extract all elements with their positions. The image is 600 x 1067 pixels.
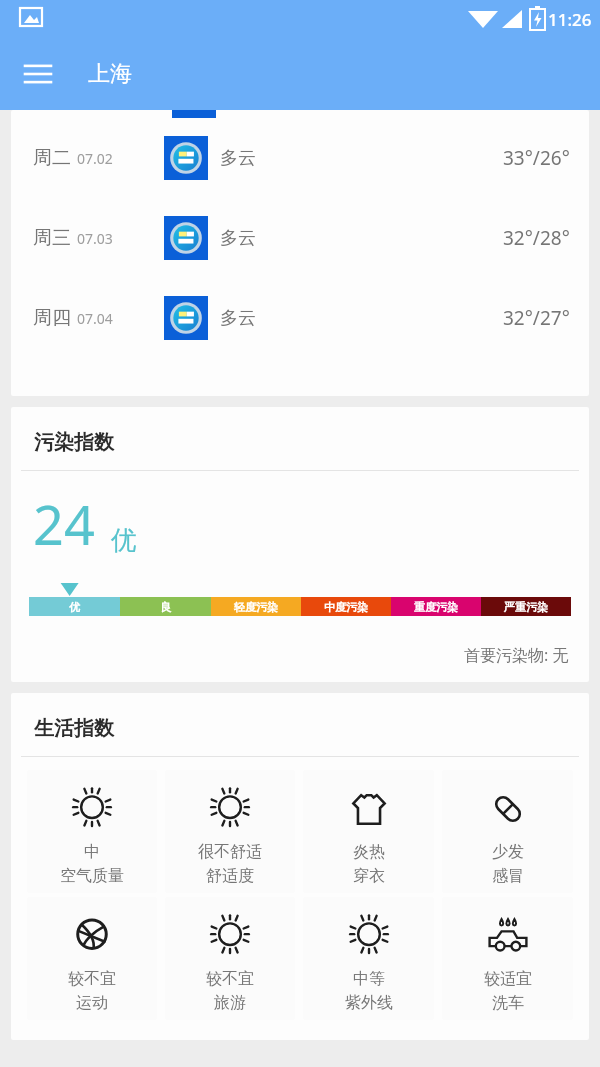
button[interactable]: 少发: [442, 770, 573, 893]
staticText: 07.03: [77, 229, 113, 248]
button[interactable]: 很不舒适: [165, 770, 295, 893]
staticText: 33°/26°: [503, 145, 570, 171]
staticText: 多云: [220, 227, 256, 250]
button[interactable]: 中等: [303, 897, 434, 1020]
staticText: 生活指数: [34, 716, 114, 741]
staticText: 感冒: [492, 866, 524, 886]
staticText: 良: [160, 600, 171, 614]
staticText: 洗车: [492, 993, 524, 1013]
button[interactable]: 较适宜: [442, 897, 573, 1020]
button[interactable]: 周二: [11, 118, 589, 198]
staticText: 旅游: [214, 993, 246, 1013]
button[interactable]: 周三: [11, 198, 589, 278]
staticText: 空气质量: [60, 866, 124, 886]
staticText: 较不宜: [68, 969, 116, 989]
staticText: 舒适度: [206, 866, 254, 886]
button[interactable]: 较不宜: [27, 897, 157, 1020]
staticText: 优: [69, 600, 80, 614]
staticText: 轻度污染: [234, 600, 278, 614]
button[interactable]: 中: [27, 770, 157, 893]
staticText: 11:26: [548, 8, 592, 31]
staticText: 32°/27°: [503, 305, 570, 331]
staticText: 首要污染物: 无: [464, 644, 569, 666]
staticText: 周四: [33, 306, 71, 330]
staticText: 07.02: [77, 149, 113, 168]
staticText: 紫外线: [345, 993, 393, 1013]
staticText: 多云: [220, 147, 256, 170]
staticText: 24: [33, 487, 95, 561]
staticText: 重度污染: [414, 600, 458, 614]
staticText: 中: [84, 842, 100, 862]
staticText: 污染指数: [34, 430, 114, 455]
staticText: 32°/28°: [503, 225, 570, 251]
button[interactable]: 较不宜: [165, 897, 295, 1020]
button[interactable]: Menu: [12, 48, 64, 100]
staticText: 较不宜: [206, 969, 254, 989]
staticText: 炎热: [353, 842, 385, 862]
staticText: 07.04: [77, 309, 113, 328]
staticText: 周三: [33, 226, 71, 250]
staticText: 周二: [33, 146, 71, 170]
button[interactable]: 周四: [11, 278, 589, 358]
staticText: 运动: [76, 993, 108, 1013]
staticText: 严重污染: [504, 600, 548, 614]
staticText: 多云: [220, 307, 256, 330]
staticText: 穿衣: [353, 866, 385, 886]
staticText: 中等: [353, 969, 385, 989]
staticText: 优: [111, 524, 137, 557]
staticText: 少发: [492, 842, 524, 862]
button[interactable]: 炎热: [303, 770, 434, 893]
staticText: 上海: [88, 60, 132, 88]
staticText: 中度污染: [324, 600, 368, 614]
staticText: 很不舒适: [198, 842, 262, 862]
staticText: 较适宜: [484, 969, 532, 989]
